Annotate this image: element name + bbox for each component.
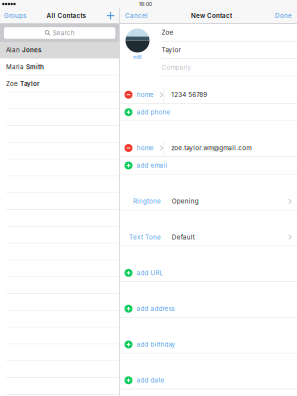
staticText: 18:00: [139, 1, 152, 7]
button[interactable]: edit: [133, 53, 142, 60]
button[interactable]: Alan: [0, 42, 119, 59]
staticText: Ringtone: [133, 197, 161, 205]
staticText: add birthday: [136, 341, 175, 348]
staticText: Cancel: [125, 12, 148, 19]
staticText: Taylor: [20, 80, 39, 87]
staticText: add address: [136, 305, 174, 312]
staticText: New Contact: [191, 12, 232, 19]
staticText: home: [137, 91, 154, 98]
button[interactable]: add birthday: [120, 336, 297, 354]
button[interactable]: Ringtone: [120, 193, 297, 210]
button[interactable]: Done: [270, 8, 297, 23]
staticText: zoe.taylor.wm@gmail.com: [171, 144, 251, 152]
staticText: Search: [51, 29, 75, 37]
staticText: Groups: [4, 12, 26, 19]
staticText: Zoe: [6, 80, 18, 87]
button[interactable]: Groups: [0, 8, 30, 23]
staticText: Done: [275, 12, 292, 19]
button[interactable]: Zoe: [0, 76, 119, 92]
staticText: Alan: [6, 46, 20, 54]
button[interactable]: Text Tone: [120, 229, 297, 246]
staticText: Opening: [172, 197, 199, 205]
staticText: Company: [161, 64, 191, 71]
staticText: Maria: [6, 63, 24, 71]
staticText: Jones: [22, 46, 41, 54]
button[interactable]: add email: [120, 157, 297, 175]
button[interactable]: Maria: [0, 59, 119, 76]
staticText: edit: [133, 53, 142, 60]
staticText: home: [137, 144, 154, 152]
button[interactable]: add phone: [120, 104, 297, 121]
button[interactable]: home: [120, 86, 297, 104]
staticText: 1234 56789: [171, 91, 207, 98]
button[interactable]: Cancel: [120, 8, 153, 23]
staticText: add URL: [136, 269, 163, 277]
staticText: Smith: [26, 63, 44, 71]
button[interactable]: home: [120, 140, 297, 157]
staticText: All Contacts: [46, 12, 85, 19]
staticText: Taylor: [161, 46, 180, 54]
button[interactable]: add URL: [120, 264, 297, 282]
staticText: add phone: [136, 108, 170, 116]
staticText: Text Tone: [129, 233, 161, 241]
staticText: add email: [136, 162, 167, 169]
button[interactable]: add date: [120, 372, 297, 389]
button[interactable]: add address: [120, 300, 297, 318]
staticText: Zoe: [161, 29, 173, 36]
staticText: Default: [172, 233, 195, 241]
staticText: add date: [136, 376, 164, 384]
button[interactable]: Add contact: [102, 8, 119, 23]
